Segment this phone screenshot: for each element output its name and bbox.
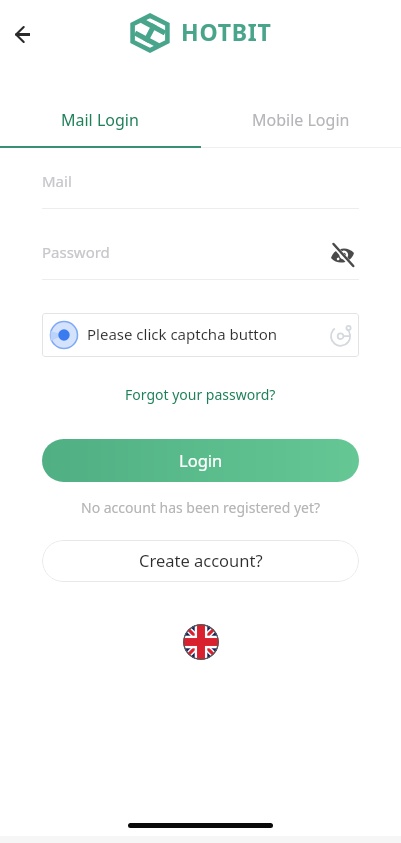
button[interactable]: Back [2,14,42,54]
staticText: Mail [42,171,72,191]
button[interactable]: Mail [42,164,359,200]
button[interactable]: Forgot your password? [121,382,280,407]
staticText: Login [179,449,223,471]
button[interactable]: Create account? [42,540,359,582]
staticText: Please click captcha button [87,324,278,344]
staticText: Create account? [139,549,263,571]
staticText: Forgot your password? [125,385,276,404]
staticText: Mobile Login [252,109,350,131]
staticText: No account has been registered yet? [81,498,321,517]
button[interactable]: Login [42,439,359,482]
button[interactable]: Please click captcha button [42,313,359,357]
button[interactable]: Change language [183,624,219,660]
staticText: Password [42,242,110,262]
button[interactable]: Mail Login [0,103,200,148]
button[interactable]: Mobile Login [200,103,401,148]
button[interactable]: Show password [325,238,359,272]
staticText: HOTBIT [181,16,272,47]
staticText: Mail Login [61,109,139,131]
